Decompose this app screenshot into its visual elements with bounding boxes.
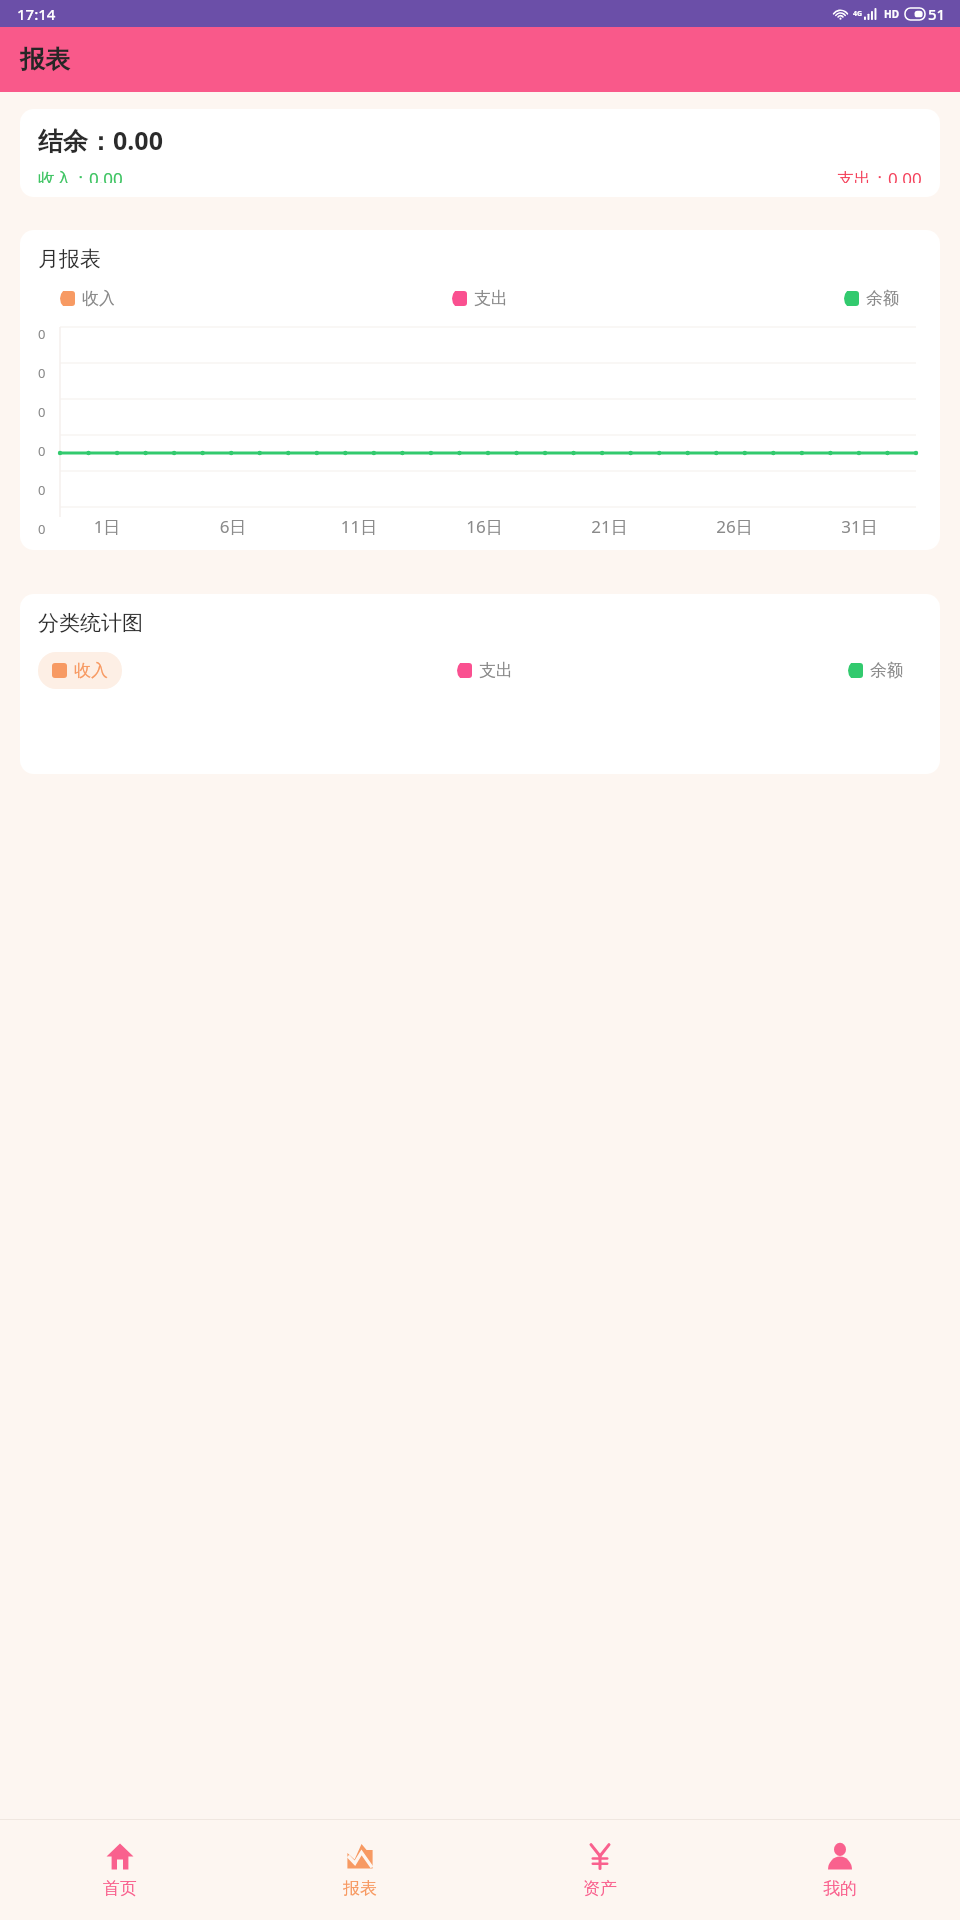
staticText: 支出 [474,288,508,309]
staticText: 21日 [547,515,672,538]
staticText: 首页 [103,1878,137,1899]
staticText: 16日 [422,515,547,538]
button[interactable]: 余额 [848,660,904,681]
staticText: 资产 [583,1878,617,1899]
staticText: 余额 [870,660,904,681]
staticText: 4G [853,9,863,19]
staticText: 1日 [44,515,170,538]
staticText: 报表 [20,44,70,75]
staticText: 0 [38,403,46,421]
staticText: 0 [38,520,46,538]
button[interactable]: 报表 [240,1820,480,1920]
button[interactable]: 支出 [457,660,513,681]
staticText: 支出 [479,660,513,681]
button[interactable]: 分类统计图 [20,594,940,774]
staticText: 11日 [296,515,422,538]
button[interactable]: 余额 [844,288,900,309]
staticText: 6日 [170,515,296,538]
staticText: 0 [38,364,46,382]
button[interactable]: 首页 [0,1820,240,1920]
staticText: 余额 [866,288,900,309]
button[interactable]: 支出 [452,288,508,309]
staticText: 17:14 [17,4,56,24]
staticText: 收入：0.00 [38,167,123,183]
staticText: 收入 [74,660,108,681]
staticText: 月报表 [38,246,101,272]
staticText: 51 [928,4,946,24]
staticText: 结余：0.00 [38,123,163,157]
staticText: 我的 [823,1878,857,1899]
staticText: 0 [38,442,46,460]
staticText: 支出：0.00 [837,167,922,183]
button[interactable]: 资产 [480,1820,720,1920]
staticText: 分类统计图 [38,610,143,636]
button[interactable]: 收入 [60,288,116,309]
button[interactable]: 月报表 [20,230,940,550]
button[interactable]: 我的 [720,1820,960,1920]
button[interactable]: 收入 [38,652,122,689]
staticText: 31日 [797,515,922,538]
staticText: 26日 [672,515,797,538]
staticText: 收入 [82,288,116,309]
staticText: 报表 [343,1878,377,1899]
staticText: HD [884,7,899,21]
button[interactable]: 结余：0.00 [20,109,940,197]
staticText: 0 [38,325,46,343]
staticText: 0 [38,481,46,499]
